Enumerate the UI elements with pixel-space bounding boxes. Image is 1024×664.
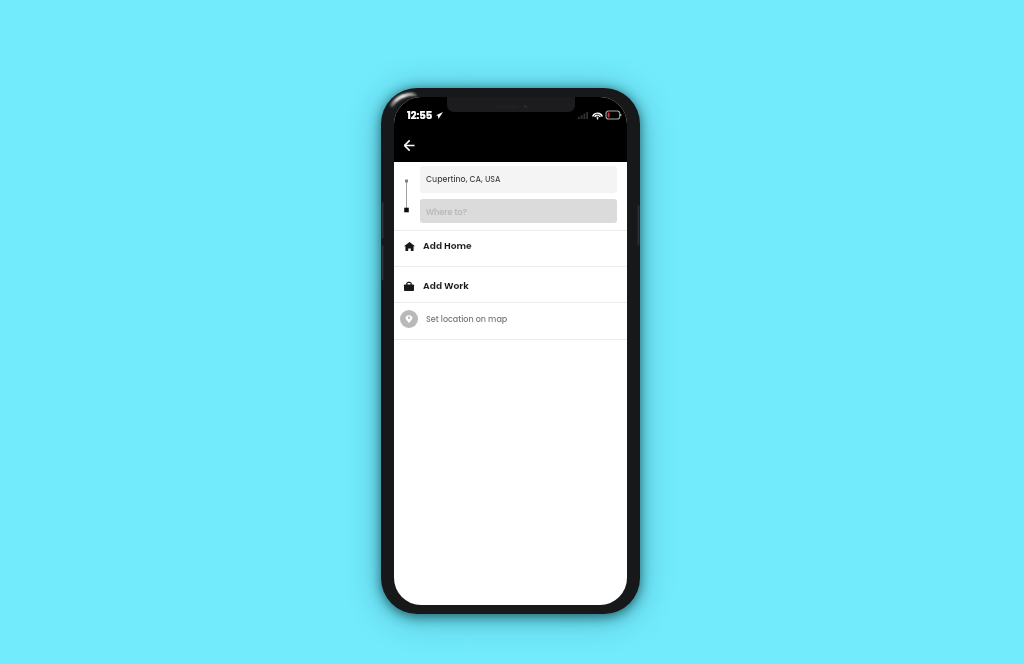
staticText: Cupertino, CA, USA [426,174,501,185]
button[interactable]: Where to? [420,199,617,223]
button[interactable]: Back [396,132,422,158]
staticText: Add Work [423,279,469,292]
staticText: 12:55 [407,108,433,122]
button[interactable]: Add Home [394,231,627,266]
button[interactable]: Add Work [394,267,627,302]
staticText: Add Home [423,239,472,252]
button[interactable]: Cupertino, CA, USA [420,166,617,193]
staticText: Where to? [426,206,468,217]
staticText: Set location on map [426,314,508,325]
button[interactable]: Set location on map [394,303,627,339]
